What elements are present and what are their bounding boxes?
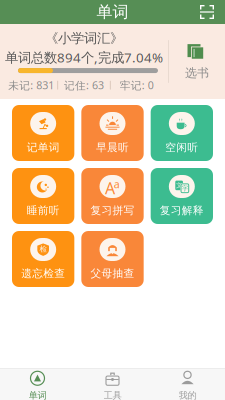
button[interactable]: 睡前听 <box>12 168 74 224</box>
button[interactable]: 选书 <box>169 30 225 92</box>
staticText: 文 <box>174 180 182 190</box>
staticText: 《小学词汇》 <box>45 30 123 46</box>
staticText: 父母抽查 <box>90 267 134 280</box>
button[interactable]: 文 <box>151 168 213 224</box>
button[interactable]: 空闲听 <box>151 105 213 161</box>
staticText: 遗忘检查 <box>21 267 65 280</box>
button[interactable]: 记单词 <box>12 105 74 161</box>
staticText: 单词总数894个,完成7.04% <box>5 48 163 66</box>
staticText: A <box>103 175 116 202</box>
staticText: 未记: <box>8 78 33 92</box>
button[interactable]: 我的 <box>150 369 225 400</box>
staticText: 我的 <box>178 390 196 400</box>
staticText: 单词 <box>96 2 128 22</box>
button[interactable]: 工具 <box>75 369 150 400</box>
staticText: 字 <box>182 184 190 194</box>
staticText: 检 <box>39 243 48 255</box>
staticText: a <box>114 175 121 192</box>
staticText: 工具 <box>103 390 121 400</box>
button[interactable]: 父母抽查 <box>81 231 144 287</box>
button[interactable]: 扫描 <box>199 4 225 20</box>
staticText: 记住: <box>64 78 89 92</box>
staticText: 831 <box>36 78 54 92</box>
staticText: 选书 <box>185 66 209 80</box>
staticText: 单词 <box>28 390 46 400</box>
button[interactable]: 检 <box>12 231 74 287</box>
staticText: 0 <box>148 78 154 92</box>
staticText: 空闲听 <box>165 141 198 154</box>
button[interactable]: A <box>81 168 144 224</box>
staticText: 63 <box>92 78 104 92</box>
button[interactable]: 早晨听 <box>81 105 144 161</box>
staticText: 牢记: <box>120 78 145 92</box>
staticText: 复习拼写 <box>90 204 134 217</box>
staticText: 早晨听 <box>96 141 129 154</box>
staticText: 记单词 <box>27 141 60 154</box>
staticText: 睡前听 <box>27 204 60 217</box>
staticText: 复习解释 <box>160 204 204 217</box>
button[interactable]: 单词 <box>0 369 75 400</box>
